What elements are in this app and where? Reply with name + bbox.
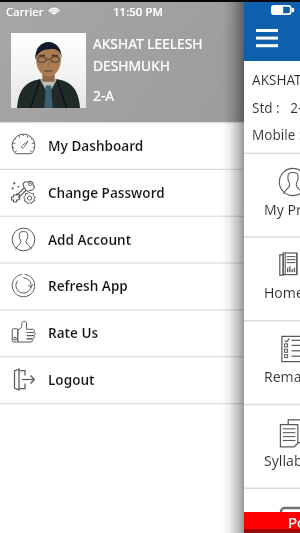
staticText: AKSHAT <box>252 71 300 89</box>
button[interactable]: Syllabus <box>0 404 300 488</box>
staticText: Std : 2-A <box>252 99 300 117</box>
staticText: DESHMUKH <box>93 56 170 75</box>
staticText: Homework <box>264 283 300 302</box>
staticText: Syllabus <box>264 451 300 470</box>
staticText: 2-A <box>93 86 115 105</box>
staticText: Refresh App <box>48 277 128 295</box>
button[interactable]: My Dashboard <box>0 122 244 169</box>
staticText: 11:50 PM <box>113 4 164 20</box>
staticText: Remarks <box>264 367 300 386</box>
staticText: Rate Us <box>48 324 99 342</box>
button[interactable]: Po <box>0 512 300 529</box>
staticText: AKSHAT LEELESH <box>93 34 203 53</box>
staticText: Po <box>288 512 300 529</box>
button[interactable]: Homework <box>0 236 300 320</box>
staticText: Add Account <box>48 231 132 249</box>
button[interactable]: Change Password <box>0 169 244 216</box>
button[interactable]: Add Account <box>0 216 244 263</box>
button[interactable]: My Profile <box>0 153 300 237</box>
staticText: My Dashboard <box>48 137 144 155</box>
button[interactable]: Open navigation drawer <box>256 29 282 50</box>
button[interactable]: Refresh App <box>0 262 244 309</box>
staticText: My Profile <box>264 200 300 219</box>
button[interactable]: Logout <box>0 356 244 403</box>
staticText: Carrier <box>6 4 44 20</box>
staticText: Mobile : <box>252 126 300 144</box>
button[interactable]: Rate Us <box>0 309 244 356</box>
staticText: Change Password <box>48 184 165 202</box>
button[interactable]: Remarks <box>0 320 300 404</box>
staticText: Logout <box>48 371 95 389</box>
